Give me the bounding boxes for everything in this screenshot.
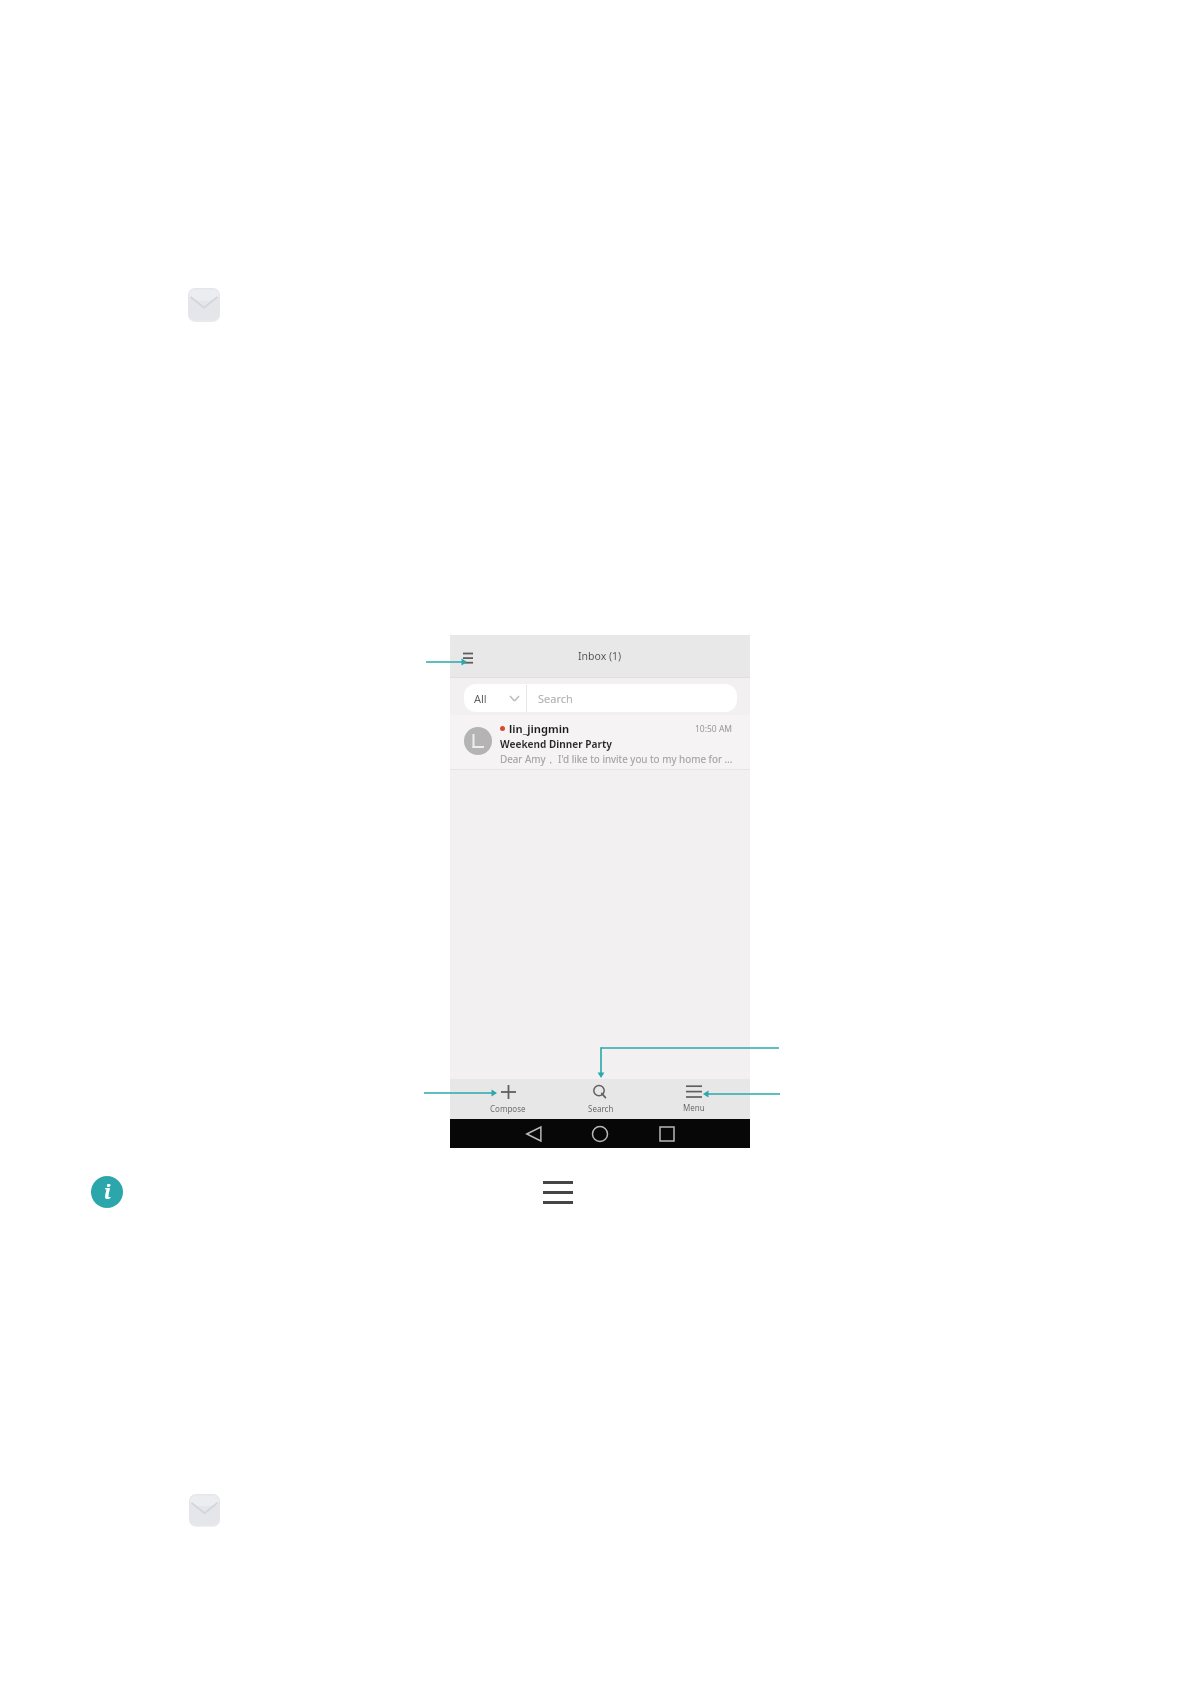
button[interactable]: Menu xyxy=(541,1176,575,1208)
staticText: Inbox (1) xyxy=(578,649,622,663)
staticText: Menu xyxy=(683,1102,705,1113)
staticText: lin_jingmin xyxy=(509,721,570,736)
staticText: Weekend Dinner Party xyxy=(500,737,613,751)
staticText: Search xyxy=(588,1103,614,1114)
staticText: 10:50 AM xyxy=(695,723,733,735)
button[interactable]: Search xyxy=(554,1079,647,1119)
button[interactable]: All xyxy=(464,684,737,712)
button[interactable]: Navigation menu xyxy=(463,652,474,664)
button[interactable]: Menu xyxy=(647,1079,740,1119)
staticText: Compose xyxy=(490,1103,526,1114)
staticText: i xyxy=(104,1179,111,1205)
button[interactable]: Compose xyxy=(462,1079,554,1119)
button[interactable]: Information xyxy=(91,1176,123,1208)
button[interactable]: lin_jingmin xyxy=(450,715,750,769)
staticText: Dear Amy， I'd like to invite you to my h… xyxy=(500,752,733,766)
staticText: Search xyxy=(538,691,573,706)
button[interactable]: Home xyxy=(584,1119,616,1148)
staticText: All xyxy=(474,691,487,706)
button[interactable]: Recent apps xyxy=(651,1119,683,1148)
button[interactable]: Back xyxy=(518,1119,550,1148)
